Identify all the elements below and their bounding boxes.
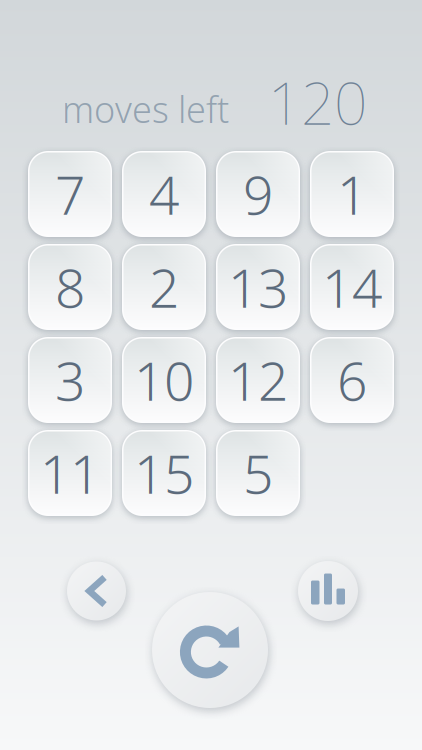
staticText: 4 bbox=[149, 159, 179, 229]
staticText: 2 bbox=[149, 252, 179, 322]
button[interactable]: 13 bbox=[216, 244, 300, 330]
button[interactable]: 14 bbox=[310, 244, 394, 330]
button[interactable]: Restart bbox=[152, 592, 268, 708]
button[interactable]: 6 bbox=[310, 337, 394, 423]
button[interactable]: 3 bbox=[28, 337, 112, 423]
button[interactable]: 2 bbox=[122, 244, 206, 330]
staticText: 6 bbox=[337, 345, 367, 415]
button[interactable]: 10 bbox=[122, 337, 206, 423]
staticText: 13 bbox=[228, 252, 288, 322]
staticText: 3 bbox=[55, 345, 85, 415]
staticText: 12 bbox=[228, 345, 288, 415]
staticText: 120 bbox=[268, 63, 367, 141]
staticText: 5 bbox=[243, 438, 273, 508]
button[interactable]: 5 bbox=[216, 430, 300, 516]
button[interactable]: 12 bbox=[216, 337, 300, 423]
staticText: 15 bbox=[134, 438, 194, 508]
staticText: 7 bbox=[55, 159, 85, 229]
button[interactable]: 9 bbox=[216, 151, 300, 237]
staticText: 14 bbox=[322, 252, 382, 322]
staticText: 8 bbox=[55, 252, 85, 322]
button[interactable]: 11 bbox=[28, 430, 112, 516]
staticText: 10 bbox=[134, 345, 194, 415]
button[interactable]: 7 bbox=[28, 151, 112, 237]
button[interactable]: 8 bbox=[28, 244, 112, 330]
staticText: 9 bbox=[243, 159, 273, 229]
staticText: 1 bbox=[337, 159, 367, 229]
button[interactable]: Statistics bbox=[298, 561, 358, 621]
staticText: moves left bbox=[62, 85, 229, 133]
button[interactable]: 1 bbox=[310, 151, 394, 237]
button[interactable]: 4 bbox=[122, 151, 206, 237]
staticText: 11 bbox=[40, 438, 100, 508]
button[interactable]: 15 bbox=[122, 430, 206, 516]
button[interactable]: Back bbox=[67, 561, 126, 620]
